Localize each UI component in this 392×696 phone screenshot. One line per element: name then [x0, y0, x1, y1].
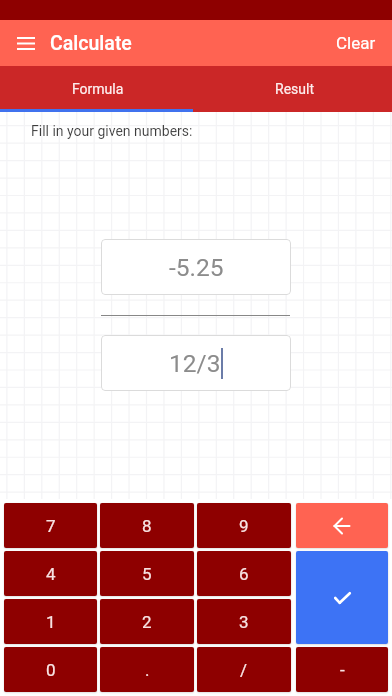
- staticText: 8: [142, 516, 152, 536]
- staticText: Formula: [72, 81, 124, 97]
- button[interactable]: 0: [4, 647, 97, 692]
- button[interactable]: /: [197, 647, 291, 692]
- button[interactable]: 6: [197, 551, 291, 596]
- button[interactable]: Result: [196, 66, 392, 112]
- staticText: 0: [46, 660, 56, 680]
- button[interactable]: 3: [197, 599, 291, 644]
- staticText: -: [340, 660, 345, 680]
- button[interactable]: 1: [4, 599, 97, 644]
- staticText: Fill in your given numbers:: [31, 123, 193, 139]
- staticText: 6: [239, 564, 249, 584]
- button[interactable]: 5: [100, 551, 194, 596]
- staticText: 2: [142, 612, 152, 632]
- button[interactable]: -5.25: [101, 239, 291, 295]
- staticText: 3: [239, 612, 249, 632]
- button[interactable]: 4: [4, 551, 97, 596]
- button[interactable]: 12/3: [101, 335, 291, 391]
- staticText: .: [145, 660, 150, 680]
- button[interactable]: -: [296, 647, 388, 692]
- staticText: -5.25: [169, 253, 224, 282]
- staticText: Clear: [336, 33, 376, 53]
- button[interactable]: 7: [4, 503, 97, 548]
- button[interactable]: Confirm: [296, 551, 388, 644]
- button[interactable]: 2: [100, 599, 194, 644]
- button[interactable]: 9: [197, 503, 291, 548]
- staticText: 1: [46, 612, 56, 632]
- button[interactable]: Clear: [328, 25, 384, 61]
- staticText: Calculate: [50, 32, 132, 55]
- staticText: /: [240, 660, 248, 680]
- staticText: 5: [142, 564, 152, 584]
- button[interactable]: Backspace: [296, 503, 388, 548]
- staticText: Result: [275, 81, 314, 97]
- staticText: 9: [239, 516, 249, 536]
- staticText: 4: [46, 564, 56, 584]
- button[interactable]: Menu: [8, 25, 44, 61]
- button[interactable]: .: [100, 647, 194, 692]
- staticText: 7: [46, 516, 56, 536]
- button[interactable]: Formula: [0, 66, 196, 112]
- staticText: 12/3: [169, 349, 221, 378]
- button[interactable]: 8: [100, 503, 194, 548]
